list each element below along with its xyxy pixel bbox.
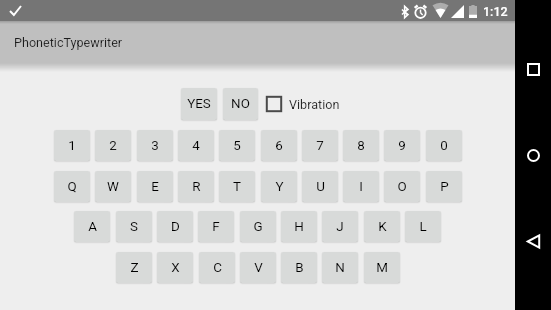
staticText: Q [67,179,77,195]
button[interactable]: 1 [54,130,90,161]
button[interactable]: NO [223,88,258,120]
staticText: B [295,260,304,276]
button[interactable]: L [405,211,441,242]
staticText: C [213,260,222,276]
staticText: G [253,219,263,235]
button[interactable]: F [198,211,234,242]
staticText: 4 [192,138,200,154]
button[interactable]: 3 [137,130,173,161]
button[interactable]: C [199,252,235,283]
staticText: X [171,260,180,276]
staticText: H [294,219,304,235]
button[interactable]: D [157,211,193,242]
staticText: 2 [109,138,117,154]
other: Notification [10,6,21,15]
staticText: J [336,219,344,235]
staticText: T [233,179,241,195]
staticText: 7 [316,138,324,154]
staticText: O [397,179,407,195]
button[interactable]: G [240,211,276,242]
button[interactable]: E [137,171,173,202]
staticText: E [151,179,159,195]
button[interactable]: Back [521,229,545,253]
button[interactable]: 8 [343,130,379,161]
button[interactable]: Y [261,171,297,202]
button[interactable]: Q [54,171,90,202]
staticText: R [192,179,201,195]
button[interactable]: H [281,211,317,242]
staticText: L [419,219,427,235]
staticText: 1:12 [483,4,508,19]
staticText: F [212,219,220,235]
staticText: 1 [68,138,76,154]
button[interactable]: 7 [302,130,338,161]
button[interactable]: 0 [426,130,462,161]
staticText: V [254,260,263,276]
button[interactable]: Recent apps [521,57,545,81]
staticText: K [378,219,387,235]
button[interactable]: N [322,252,358,283]
staticText: N [335,260,345,276]
button[interactable]: U [302,171,338,202]
button[interactable]: 2 [95,130,131,161]
staticText: U [316,179,325,195]
staticText: Vibration [289,97,340,112]
button[interactable]: I [343,171,379,202]
button[interactable]: B [281,252,317,283]
button[interactable]: A [74,211,110,242]
staticText: 9 [398,138,406,154]
button[interactable]: T [219,171,255,202]
button[interactable]: M [364,252,400,283]
staticText: NO [231,96,250,112]
button[interactable]: J [322,211,358,242]
button[interactable]: 5 [219,130,255,161]
button[interactable]: 4 [178,130,214,161]
staticText: 3 [151,138,159,154]
staticText: 8 [357,138,365,154]
button[interactable]: V [240,252,276,283]
staticText: YES [187,96,211,112]
button[interactable]: P [426,171,462,202]
button[interactable]: K [364,211,400,242]
staticText: A [88,219,97,235]
staticText: 5 [233,138,241,154]
staticText: D [171,219,180,235]
button[interactable]: 9 [384,130,420,161]
staticText: M [376,260,388,276]
staticText: S [130,219,138,235]
button[interactable]: Vibration [266,88,340,120]
button[interactable]: R [178,171,214,202]
button[interactable]: S [116,211,152,242]
button[interactable]: 6 [261,130,297,161]
staticText: PhoneticTypewriter [14,35,123,50]
staticText: P [440,179,449,195]
button[interactable]: X [157,252,193,283]
button[interactable]: YES [181,88,217,120]
staticText: I [359,179,363,195]
staticText: Y [275,179,284,195]
staticText: 6 [275,138,283,154]
button[interactable]: Home [521,143,545,167]
button[interactable]: Z [116,252,152,283]
button[interactable]: W [95,171,131,202]
staticText: W [107,179,119,195]
staticText: Z [130,260,139,276]
button[interactable]: O [384,171,420,202]
staticText: 0 [440,138,448,154]
